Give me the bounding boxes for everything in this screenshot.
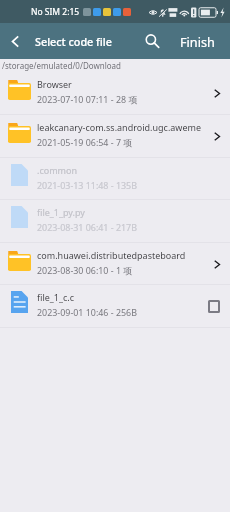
button[interactable]: file_1_c.c: [0, 285, 230, 328]
button[interactable]: com.huawei.distributedpasteboard: [0, 243, 230, 285]
staticText: 2023-08-31 06:41 - 217B: [37, 221, 137, 233]
staticText: 2021-05-19 06:54 - 7 项: [37, 136, 133, 148]
staticText: /storage/emulated/0/Download: [2, 60, 121, 71]
button[interactable]: Browser: [0, 72, 230, 115]
staticText: 2023-09-01 10:46 - 256B: [37, 306, 137, 318]
staticText: .common: [37, 164, 78, 176]
button[interactable]: .common: [0, 158, 230, 200]
staticText: com.huawei.distributedpasteboard: [37, 249, 186, 261]
button[interactable]: Search: [135, 23, 169, 59]
staticText: file_1_c.c: [37, 291, 75, 303]
staticText: 2023-07-10 07:11 - 28 项: [37, 93, 138, 105]
button[interactable]: Finish: [169, 23, 230, 59]
staticText: file_1_py.py: [37, 206, 85, 218]
staticText: 2023-08-30 06:10 - 1 项: [37, 264, 133, 276]
staticText: Finish: [180, 33, 215, 50]
button[interactable]: Back: [0, 23, 31, 59]
button[interactable]: leakcanary-com.ss.android.ugc.aweme: [0, 115, 230, 158]
staticText: No SIM 2:15: [31, 6, 80, 18]
staticText: Select code file: [35, 34, 112, 49]
button[interactable]: file_1_py.py: [0, 200, 230, 243]
staticText: Browser: [37, 78, 72, 90]
staticText: leakcanary-com.ss.android.ugc.aweme: [37, 121, 201, 133]
staticText: 2021-03-13 11:48 - 135B: [37, 179, 137, 191]
